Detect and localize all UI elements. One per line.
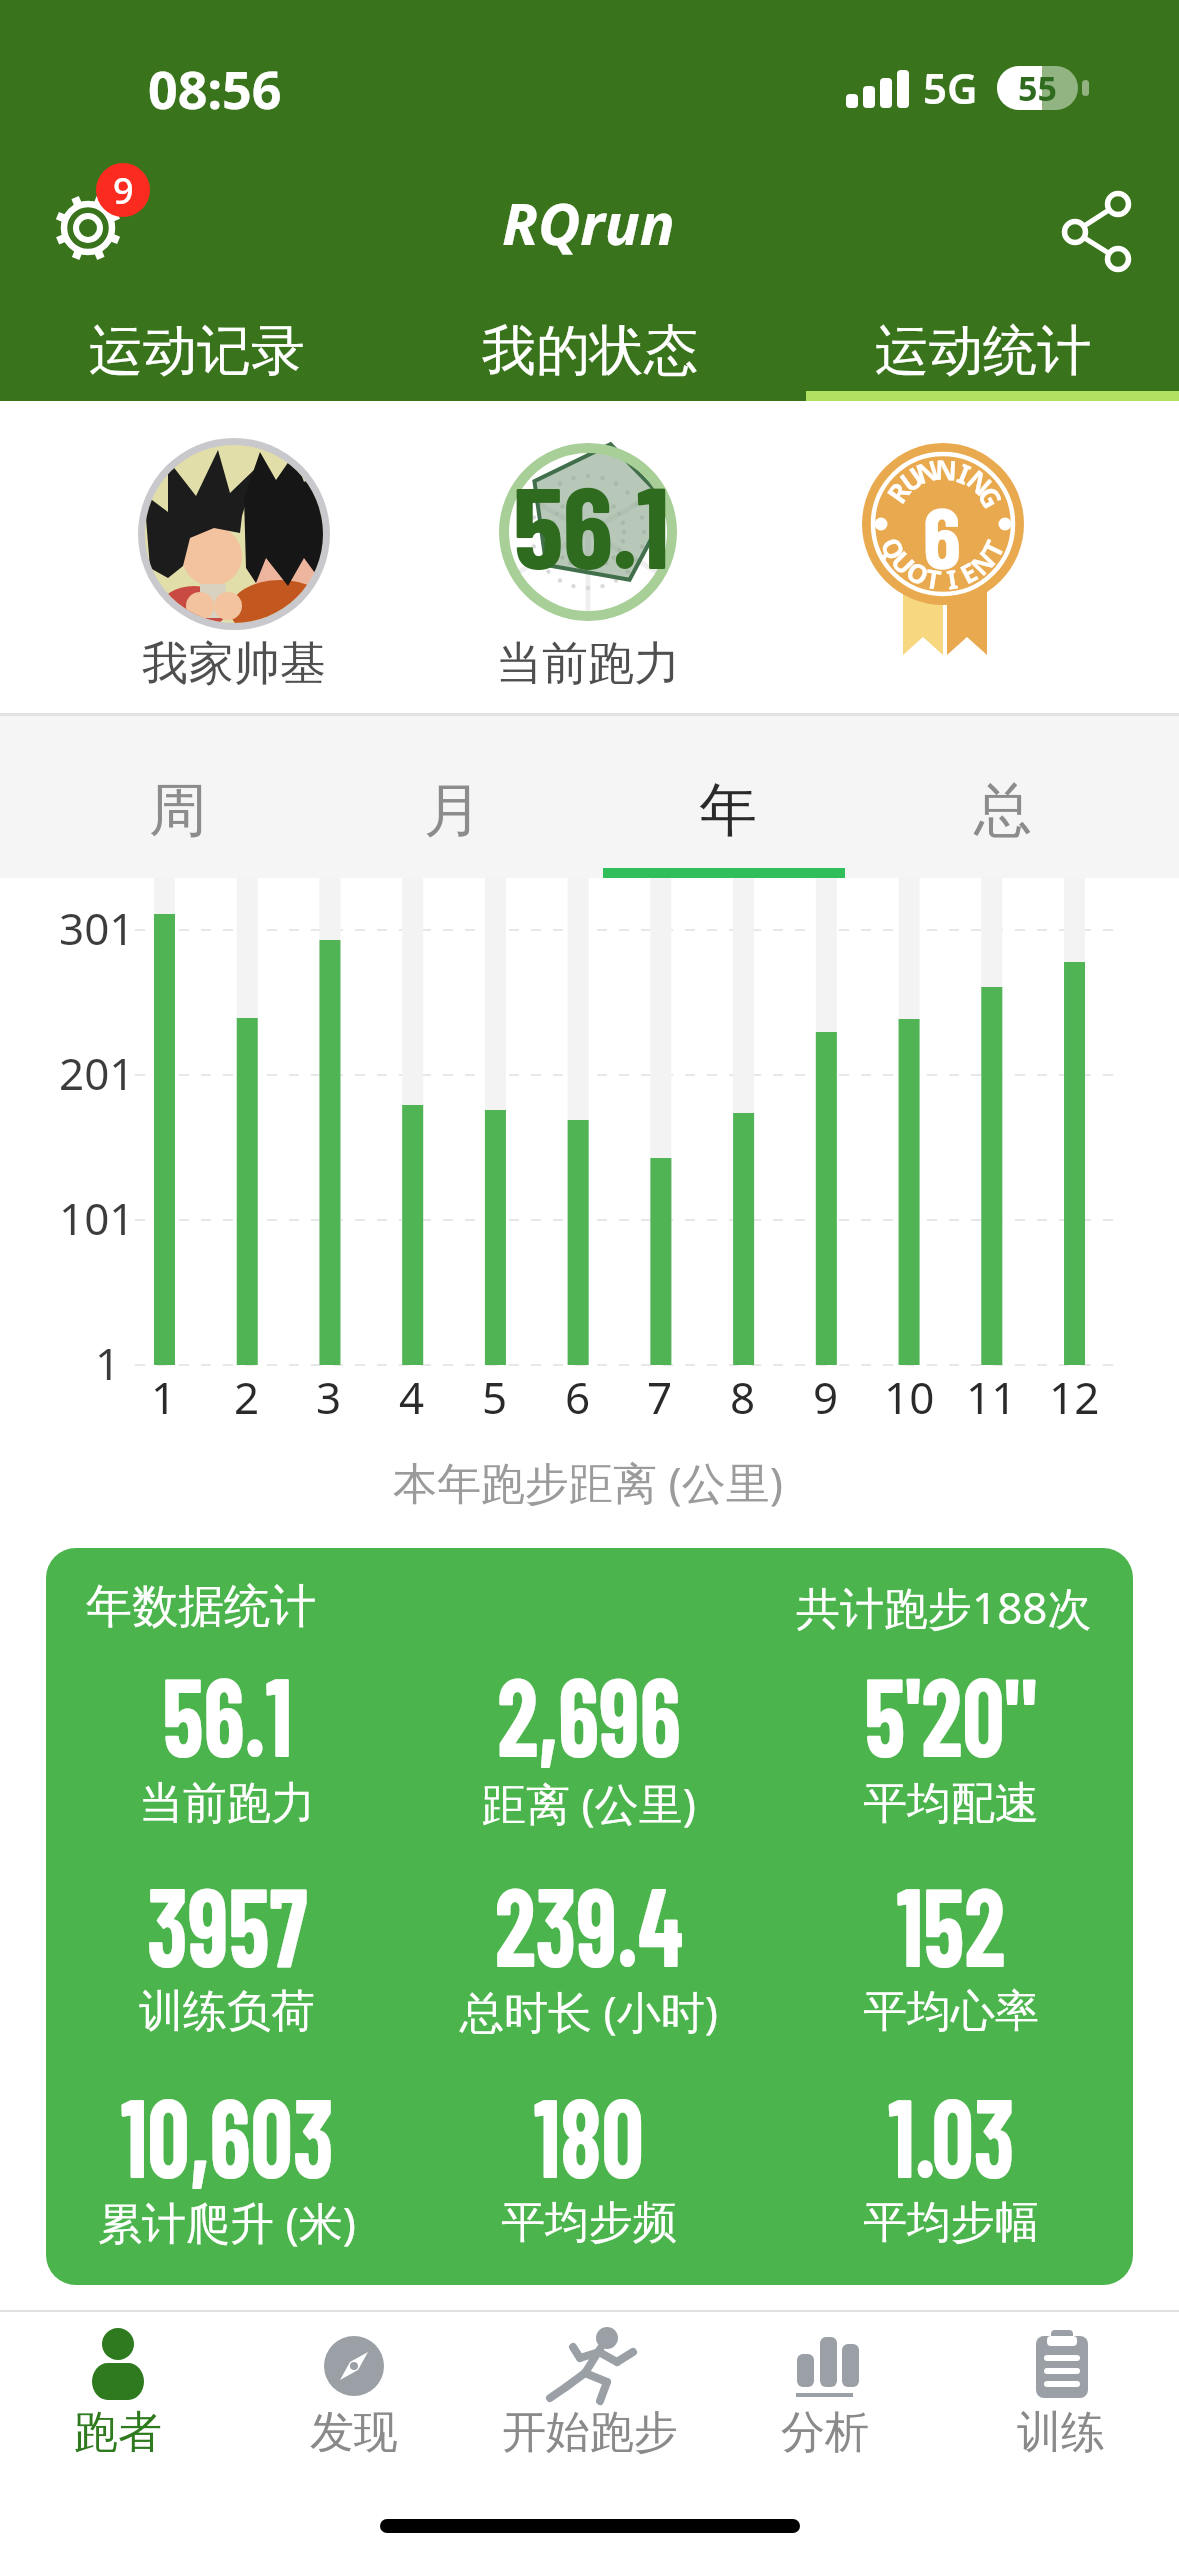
button[interactable]: 周 [40,745,315,875]
staticText: 月 [424,774,482,847]
staticText: 平均配速 [863,1776,1039,1831]
button[interactable]: 6 [853,441,1033,666]
staticText: 2,696 [497,1647,682,1779]
staticText: 开始跑步 [502,2405,678,2460]
staticText: 56.1 [513,454,669,592]
staticText: 56.1 [162,1647,292,1779]
button[interactable]: 56.1 [498,438,688,630]
button[interactable] [46,1548,1133,2285]
staticText: U [892,458,931,500]
button[interactable]: 总 [865,745,1140,875]
staticText: R [878,474,919,510]
staticText: 训练负荷 [139,1984,315,2039]
button[interactable] [138,438,330,630]
staticText: 152 [897,1857,1005,1989]
staticText: 我家帅基 [142,635,326,693]
staticText: 9 [113,166,134,215]
staticText: G [969,479,1012,515]
button[interactable] [944,2315,1179,2475]
button[interactable]: 月 [315,745,590,875]
button[interactable]: 运动统计 [786,300,1179,401]
staticText: 分析 [781,2405,869,2460]
staticText: N [934,450,958,489]
button[interactable] [237,2315,472,2475]
staticText: N [959,461,1000,503]
staticText: 12 [1049,1367,1100,1427]
staticText: 9 [813,1367,839,1427]
staticText: 3 [316,1367,342,1427]
staticText: 平均步幅 [863,2195,1039,2250]
staticText: 1.03 [888,2068,1015,2200]
staticText: 训练 [1017,2405,1105,2460]
button[interactable]: 9 [40,163,170,283]
staticText: 平均心率 [863,1984,1039,2039]
staticText: 总时长 (小时) [460,1981,718,2041]
staticText: 发现 [310,2405,398,2460]
staticText: 距离 (公里) [482,1773,696,1833]
staticText: U [884,543,923,582]
staticText: N [911,451,943,492]
staticText: Q [873,532,914,566]
staticText: 周 [149,774,207,847]
staticText: RQrun [502,183,675,262]
staticText: 总 [974,774,1032,847]
staticText: O [901,552,936,593]
button[interactable] [1048,185,1143,280]
staticText: N [962,542,1002,582]
staticText: 10,603 [121,2068,334,2200]
staticText: 10 [884,1367,935,1427]
staticText: 共计跑步188次 [796,1577,1092,1637]
staticText: 08:56 [148,53,282,124]
button[interactable] [1,2315,236,2475]
button[interactable]: 年 [590,745,865,875]
staticText: 当前跑力 [496,635,680,693]
staticText: 6 [565,1367,591,1427]
button[interactable]: 我的状态 [393,300,786,401]
staticText: 运动统计 [875,317,1091,385]
button[interactable]: 运动记录 [0,300,393,401]
staticText: 239.4 [495,1857,683,1989]
staticText: 180 [534,2068,644,2200]
staticText: 4 [399,1367,425,1427]
button[interactable] [708,2315,943,2475]
staticText: 当前跑力 [139,1776,315,1831]
staticText: T [923,560,945,597]
staticText: 11 [966,1367,1017,1427]
staticText: 55 [1018,65,1057,111]
staticText: 年数据统计 [86,1578,316,1636]
staticText: E [954,553,983,591]
staticText: 5'20" [864,1647,1038,1779]
staticText: 8 [730,1367,756,1427]
staticText: 5G [923,59,978,116]
staticText: 201 [59,1043,135,1103]
staticText: 平均步频 [501,2195,677,2250]
staticText: 本年跑步距离 (公里) [393,1452,783,1512]
staticText: I [952,454,976,493]
button[interactable] [473,2315,708,2475]
staticText: T [973,533,1012,563]
staticText: 6 [923,483,961,573]
staticText: 运动记录 [89,317,305,385]
staticText: 1 [151,1367,177,1427]
staticText: 301 [59,898,135,958]
staticText: I [944,560,961,597]
staticText: 5 [482,1367,508,1427]
staticText: 跑者 [74,2405,162,2460]
staticText: 3957 [147,1857,308,1989]
staticText: 101 [59,1188,135,1248]
staticText: 年 [699,774,757,847]
staticText: 2 [234,1367,260,1427]
staticText: 7 [647,1367,673,1427]
staticText: 1 [95,1333,121,1393]
staticText: 累计爬升 (米) [98,2192,356,2252]
staticText: 我的状态 [482,317,698,385]
